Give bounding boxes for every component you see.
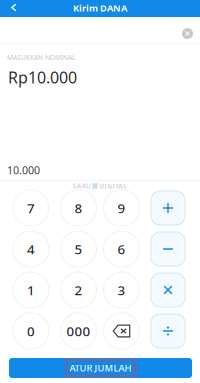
- button[interactable]: Divide: [151, 314, 185, 348]
- button[interactable]: 3: [103, 272, 139, 308]
- staticText: Kirim DANA: [73, 2, 127, 14]
- button[interactable]: Delete: [103, 313, 139, 349]
- button[interactable]: Multiply: [151, 273, 185, 307]
- staticText: 5: [74, 240, 82, 258]
- staticText: 2: [74, 281, 82, 299]
- button[interactable]: 2: [60, 272, 96, 308]
- staticText: 7: [27, 199, 35, 217]
- staticText: 3: [117, 281, 125, 299]
- button[interactable]: Back: [5, 0, 23, 16]
- button[interactable]: Clear: [178, 24, 196, 42]
- staticText: 6: [117, 240, 125, 258]
- staticText: DIGITAL: [99, 182, 127, 190]
- button[interactable]: 1: [13, 272, 49, 308]
- staticText: 000: [66, 322, 90, 340]
- staticText: SAKU: [73, 182, 91, 190]
- button[interactable]: ATUR JUMLAH: [9, 358, 192, 378]
- staticText: 8: [74, 199, 82, 217]
- staticText: MASUKKAN NOMINAL: [7, 53, 75, 62]
- staticText: 1: [27, 281, 35, 299]
- staticText: 0: [27, 322, 35, 340]
- staticText: ATUR JUMLAH: [69, 362, 131, 374]
- staticText: 9: [117, 199, 125, 217]
- staticText: 4: [27, 240, 35, 258]
- button[interactable]: Subtract: [151, 232, 185, 266]
- button[interactable]: Add: [151, 191, 185, 225]
- button[interactable]: 6: [103, 231, 139, 267]
- staticText: 10.000: [7, 163, 40, 177]
- staticText: Rp10.000: [8, 67, 77, 88]
- button[interactable]: 7: [13, 190, 49, 226]
- button[interactable]: 5: [60, 231, 96, 267]
- button[interactable]: 000: [60, 313, 96, 349]
- button[interactable]: 9: [103, 190, 139, 226]
- button[interactable]: 8: [60, 190, 96, 226]
- button[interactable]: 4: [13, 231, 49, 267]
- button[interactable]: 0: [13, 313, 49, 349]
